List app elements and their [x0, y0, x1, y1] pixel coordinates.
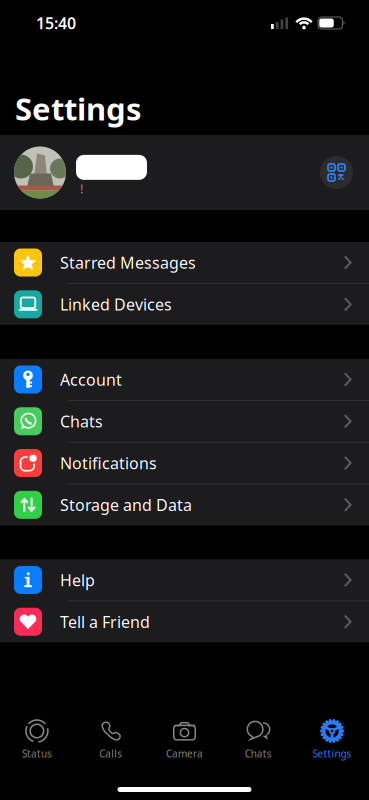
button[interactable]: Calls [74, 718, 148, 760]
button[interactable]: Account [0, 359, 369, 400]
staticText: 15:40 [36, 12, 76, 34]
staticText: Storage and Data [60, 494, 192, 515]
button[interactable]: Storage and Data [0, 484, 369, 525]
staticText: Chats [60, 411, 103, 432]
button[interactable]: Status [0, 718, 74, 760]
staticText: Linked Devices [60, 294, 172, 315]
staticText: Help [60, 569, 95, 590]
button[interactable]: Settings [295, 718, 369, 760]
button[interactable]: Chats [221, 718, 295, 760]
staticText: ! [80, 180, 83, 197]
staticText: Tell a Friend [60, 611, 150, 632]
button[interactable]: My profile [0, 135, 369, 210]
button[interactable]: Show QR code [320, 156, 353, 189]
button[interactable]: Tell a Friend [0, 601, 369, 642]
staticText: Camera [166, 747, 203, 760]
button[interactable]: Camera [148, 718, 221, 760]
staticText: Chats [245, 747, 272, 760]
button[interactable]: Notifications [0, 442, 369, 484]
staticText: Notifications [60, 452, 157, 474]
button[interactable]: Chats [0, 401, 369, 442]
staticText: Settings [313, 747, 352, 760]
button[interactable]: Linked Devices [0, 284, 369, 325]
button[interactable]: Starred Messages [0, 242, 369, 283]
staticText: Account [60, 369, 122, 390]
staticText: Starred Messages [60, 252, 196, 273]
staticText: Calls [99, 747, 122, 760]
staticText: Status [22, 747, 52, 760]
staticText: Settings [15, 88, 142, 129]
button[interactable]: Help [0, 559, 369, 600]
